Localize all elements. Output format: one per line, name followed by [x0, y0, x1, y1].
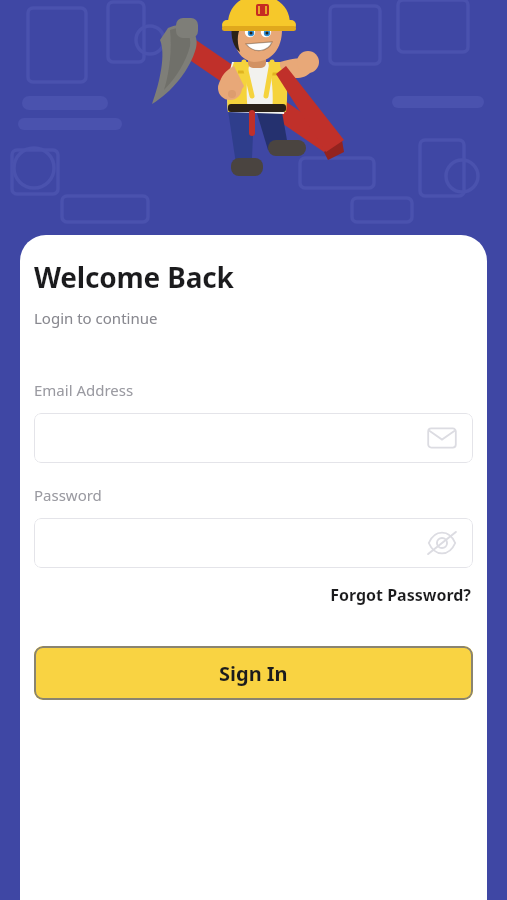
- button[interactable]: Forgot Password?: [328, 582, 473, 608]
- staticText: Forgot Password?: [330, 584, 471, 606]
- button[interactable]: Sign In: [34, 646, 473, 700]
- staticText: Email Address: [34, 380, 134, 400]
- staticText: Sign In: [219, 660, 288, 687]
- staticText: Password: [34, 485, 102, 505]
- staticText: Welcome Back: [34, 258, 234, 296]
- button[interactable]: Password input: [34, 518, 473, 568]
- button[interactable]: Email address input: [34, 413, 473, 463]
- staticText: Login to continue: [34, 308, 158, 328]
